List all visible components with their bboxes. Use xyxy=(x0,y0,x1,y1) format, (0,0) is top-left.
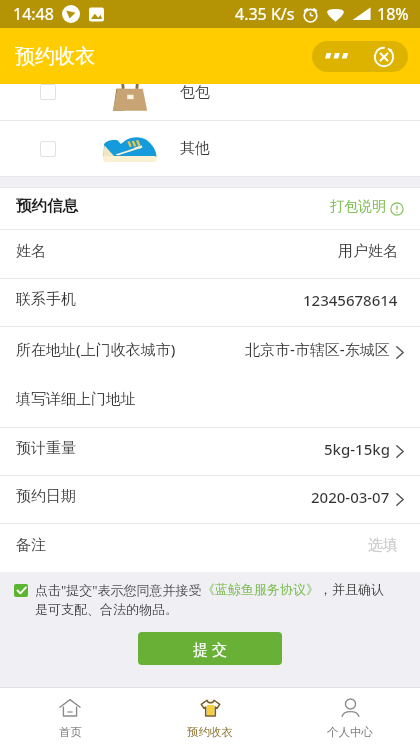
staticText: 《蓝鲸鱼服务协议》 xyxy=(202,581,319,597)
staticText: 5kg-15kg xyxy=(324,439,390,459)
button[interactable]: 提 交 xyxy=(138,632,282,665)
staticText: 所在地址(上门收衣城市) xyxy=(16,339,176,359)
button[interactable]: 预约日期 xyxy=(0,476,420,523)
staticText: 4.35 K/s xyxy=(235,3,295,25)
staticText: 2020-03-07 xyxy=(311,487,390,507)
staticText: 包包 xyxy=(180,84,210,102)
staticText: 18% xyxy=(377,3,409,25)
staticText: 点击"提交"表示您同意并接受 xyxy=(35,581,202,599)
staticText: 首页 xyxy=(59,725,82,739)
staticText: 14:48 xyxy=(13,3,54,25)
staticText: 用户姓名 xyxy=(338,242,398,261)
staticText: 是可支配、合法的物品。 xyxy=(35,601,178,617)
button[interactable]: 首页 xyxy=(0,688,140,747)
button[interactable]: More options xyxy=(312,41,360,72)
staticText: 预约收衣 xyxy=(187,725,233,739)
staticText: 北京市-市辖区-东城区 xyxy=(245,339,390,359)
button[interactable]: Close xyxy=(360,41,408,72)
button[interactable]: 其他 xyxy=(0,121,420,176)
staticText: 个人中心 xyxy=(327,725,373,739)
button[interactable]: 联系手机 xyxy=(0,279,420,326)
staticText: ，并且确认 xyxy=(319,581,384,597)
staticText: 打包说明 xyxy=(330,198,386,216)
staticText: 提 交 xyxy=(193,639,227,659)
button[interactable]: 预计重量 xyxy=(0,428,420,475)
button[interactable]: 填写详细上门地址 xyxy=(0,377,420,427)
staticText: 备注 xyxy=(16,536,46,555)
staticText: 预计重量 xyxy=(16,439,76,458)
staticText: 姓名 xyxy=(16,242,46,261)
staticText: 联系手机 xyxy=(16,290,76,309)
button[interactable]: 预约收衣 xyxy=(140,688,280,747)
staticText: 其他 xyxy=(180,139,210,158)
staticText: 预约日期 xyxy=(16,487,76,506)
button[interactable]: 个人中心 xyxy=(280,688,420,747)
button[interactable]: 打包说明 xyxy=(330,200,404,218)
button[interactable]: 所在地址(上门收衣城市) xyxy=(0,327,420,377)
staticText: 预约收衣 xyxy=(15,44,95,69)
button[interactable]: Agree to terms xyxy=(14,584,28,597)
staticText: 预约信息 xyxy=(16,196,78,216)
staticText: 选填 xyxy=(368,536,398,555)
staticText: 填写详细上门地址 xyxy=(16,390,136,409)
button[interactable]: 包包 xyxy=(0,84,420,120)
staticText: 12345678614 xyxy=(303,290,398,310)
button[interactable]: 姓名 xyxy=(0,230,420,278)
button[interactable]: 备注 xyxy=(0,524,420,572)
